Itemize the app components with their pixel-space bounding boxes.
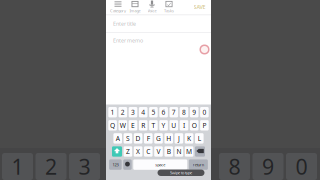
button[interactable]: A	[113, 133, 122, 144]
button[interactable]: 8	[219, 153, 250, 180]
staticText: 1	[11, 152, 23, 180]
staticText: 123	[112, 162, 118, 167]
staticText: Enter title	[113, 20, 136, 27]
staticText: 8	[228, 152, 240, 180]
button[interactable]: W	[118, 120, 127, 130]
staticText: T	[151, 121, 155, 130]
staticText: Z	[126, 147, 130, 156]
button[interactable]: Shift	[112, 146, 122, 157]
button[interactable]: Delete	[195, 146, 205, 157]
button[interactable]: 2	[35, 153, 66, 180]
button[interactable]: 4	[139, 107, 147, 117]
button[interactable]: Y	[159, 120, 168, 130]
staticText: 8	[182, 108, 186, 117]
button[interactable]: 9	[190, 107, 198, 117]
button[interactable]: X	[134, 146, 142, 157]
staticText: X	[136, 147, 140, 156]
staticText: Q	[110, 121, 115, 130]
staticText: S	[126, 134, 130, 143]
staticText: W	[120, 121, 126, 130]
button[interactable]: Q	[108, 120, 117, 130]
staticText: 9	[192, 108, 196, 117]
staticText: I	[183, 121, 185, 130]
button[interactable]: return	[189, 159, 208, 170]
button[interactable]: O	[190, 120, 198, 130]
staticText: 9	[262, 152, 274, 180]
staticText: P	[202, 121, 206, 130]
button[interactable]: 2	[118, 107, 127, 117]
staticText: K	[187, 134, 191, 143]
button[interactable]: Voice	[143, 0, 160, 13]
staticText: 3	[131, 108, 135, 117]
staticText: E	[131, 121, 135, 130]
button[interactable]: 123	[109, 159, 122, 170]
staticText: B	[167, 147, 171, 156]
staticText: 0	[202, 108, 206, 117]
staticText: 5	[151, 108, 155, 117]
staticText: space	[155, 162, 165, 167]
staticText: G	[156, 134, 161, 143]
button[interactable]: J	[175, 133, 183, 144]
staticText: Y	[162, 121, 166, 130]
button[interactable]: N	[175, 146, 183, 157]
staticText: 0	[295, 152, 307, 180]
button[interactable]: Z	[124, 146, 132, 157]
button[interactable]: 7	[169, 107, 178, 117]
button[interactable]: Category	[109, 0, 126, 13]
staticText: D	[136, 134, 141, 143]
staticText: O	[192, 121, 197, 130]
button[interactable]: S	[124, 133, 132, 144]
button[interactable]: 1	[2, 153, 33, 180]
button[interactable]: 0	[286, 153, 317, 180]
button[interactable]: P	[200, 120, 209, 130]
button[interactable]: Image	[126, 0, 143, 13]
staticText: U	[171, 121, 176, 130]
staticText: N	[176, 147, 181, 156]
staticText: Image	[129, 8, 140, 13]
button[interactable]: Tasks	[160, 0, 177, 13]
staticText: Voice	[147, 8, 156, 13]
staticText: Enter memo	[113, 37, 143, 44]
button[interactable]: 3	[69, 153, 100, 180]
button[interactable]: 5	[149, 107, 158, 117]
staticText: 2	[121, 108, 125, 117]
button[interactable]: K	[185, 133, 193, 144]
button[interactable]: H	[164, 133, 173, 144]
staticText: H	[166, 134, 171, 143]
button[interactable]: F	[144, 133, 153, 144]
button[interactable]: 6	[159, 107, 168, 117]
button[interactable]: T	[149, 120, 158, 130]
button[interactable]: 1	[108, 107, 117, 117]
staticText: M	[186, 147, 192, 156]
button[interactable]: 3	[129, 107, 137, 117]
button[interactable]: V	[154, 146, 163, 157]
staticText: L	[198, 134, 201, 143]
button[interactable]: B	[164, 146, 173, 157]
staticText: Category	[110, 8, 126, 13]
button[interactable]: C	[144, 146, 153, 157]
button[interactable]: Switch keyboard	[123, 159, 132, 170]
button[interactable]: G	[154, 133, 163, 144]
staticText: C	[146, 147, 150, 156]
staticText: J	[178, 134, 180, 143]
button[interactable]: M	[185, 146, 193, 157]
button[interactable]: SAVE	[188, 0, 210, 14]
staticText: return	[193, 162, 204, 167]
button[interactable]: space	[133, 159, 187, 170]
staticText: A	[116, 134, 120, 143]
staticText: 7	[172, 108, 176, 117]
staticText: F	[147, 134, 150, 143]
button[interactable]: I	[180, 120, 188, 130]
staticText: 2	[45, 152, 57, 180]
button[interactable]: 9	[252, 153, 283, 180]
button[interactable]: 0	[200, 107, 209, 117]
button[interactable]: E	[129, 120, 137, 130]
staticText: SAVE	[193, 3, 205, 11]
button[interactable]: R	[139, 120, 147, 130]
button[interactable]: U	[169, 120, 178, 130]
staticText: 3	[78, 152, 90, 180]
staticText: 6	[162, 108, 166, 117]
button[interactable]: L	[195, 133, 204, 144]
button[interactable]: D	[134, 133, 142, 144]
button[interactable]: 8	[180, 107, 188, 117]
